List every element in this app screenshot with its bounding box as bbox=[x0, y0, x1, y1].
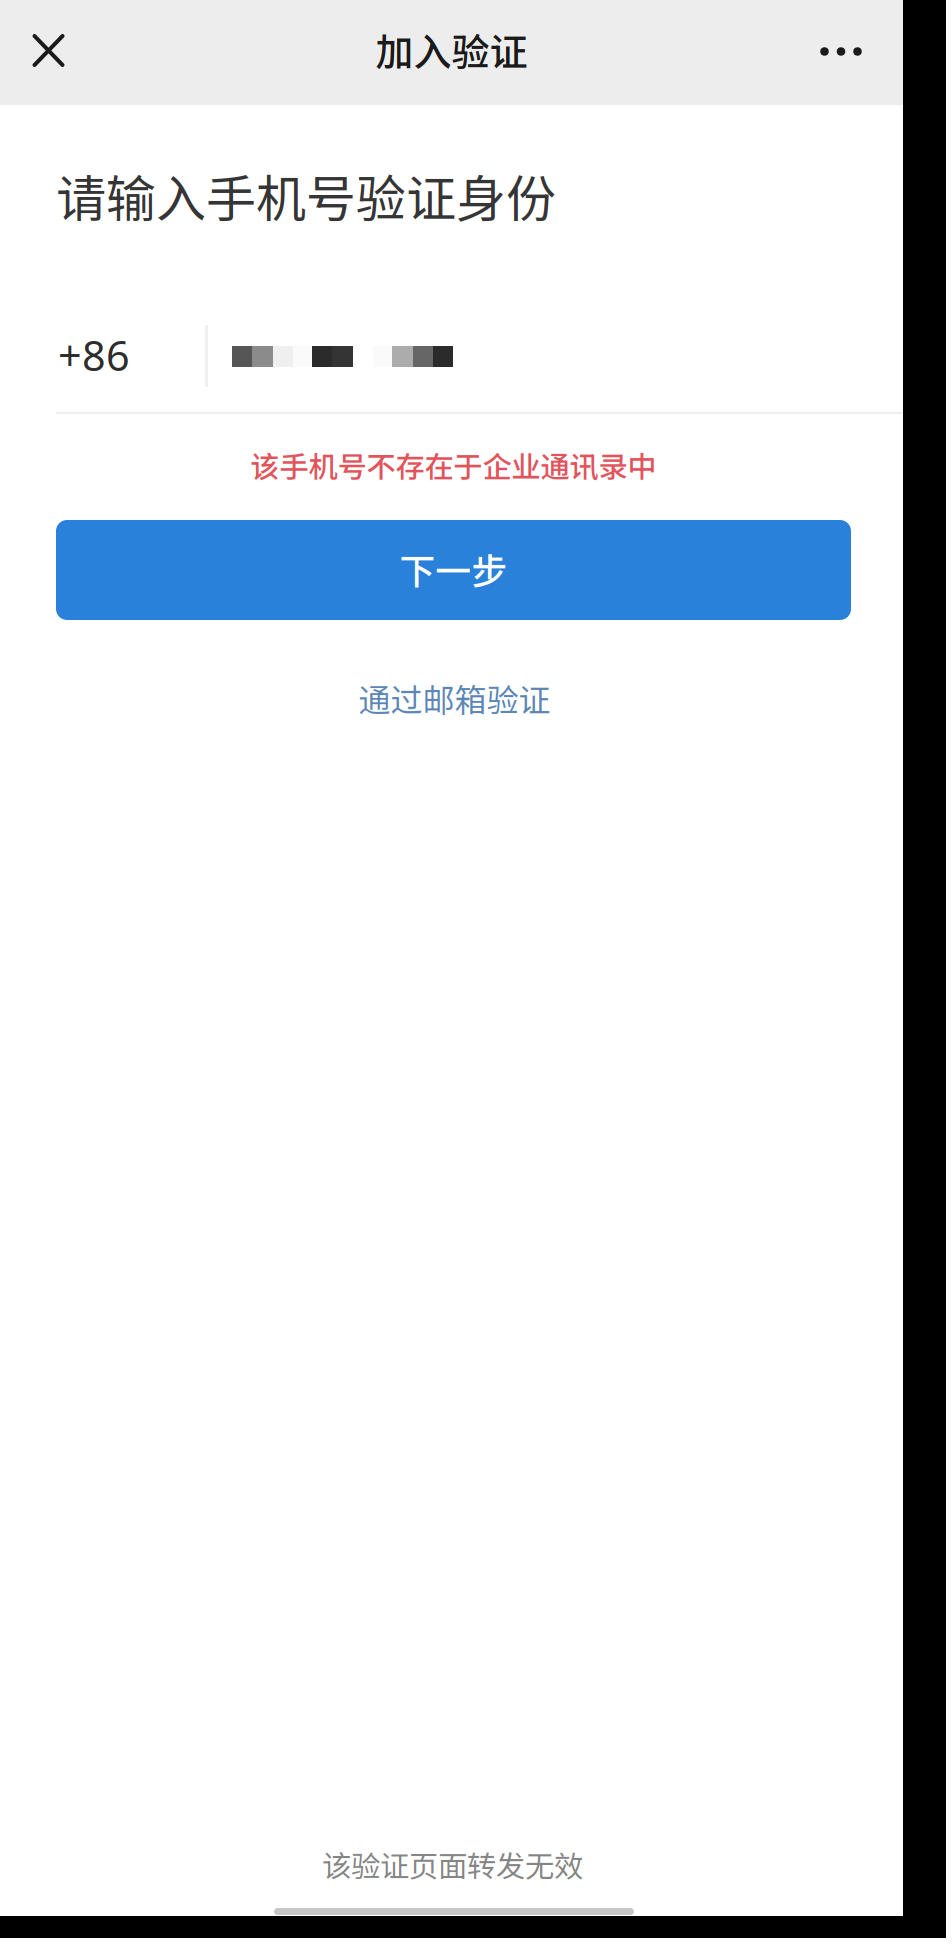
button[interactable]: 更多 bbox=[779, 0, 903, 104]
button[interactable]: 通过邮箱验证 bbox=[3, 668, 906, 728]
staticText: 下一步 bbox=[399, 543, 507, 595]
staticText: 加入验证 bbox=[375, 22, 527, 77]
staticText: 该验证页面转发无效 bbox=[322, 1843, 583, 1885]
staticText: +86 bbox=[58, 327, 130, 383]
staticText: 通过邮箱验证 bbox=[358, 675, 550, 721]
button[interactable]: +86 bbox=[58, 313, 206, 397]
button[interactable]: 下一步 bbox=[56, 520, 851, 620]
button[interactable]: 关闭 bbox=[0, 0, 97, 103]
staticText: 请输入手机号验证身份 bbox=[56, 159, 556, 231]
staticText: 该手机号不存在于企业通讯录中 bbox=[250, 444, 656, 486]
